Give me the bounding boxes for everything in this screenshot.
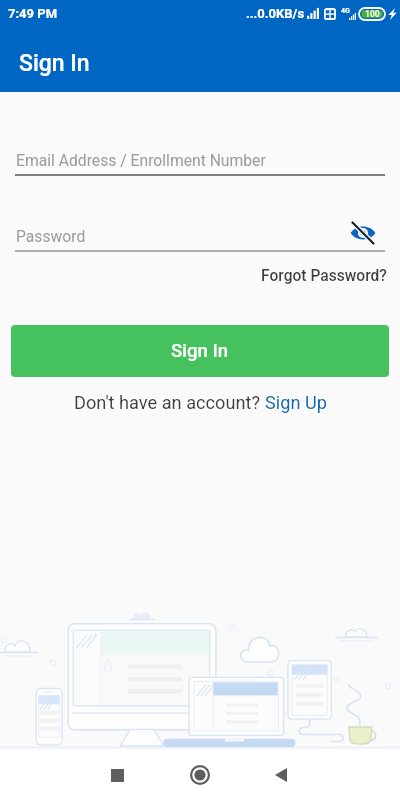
staticText: Sign In <box>171 340 229 362</box>
staticText: Password <box>16 227 86 245</box>
button[interactable]: Back <box>257 751 305 799</box>
button[interactable]: Forgot Password? <box>257 263 391 289</box>
staticText: 4G <box>341 7 350 15</box>
staticText: Sign Up <box>265 392 327 413</box>
staticText: Email Address / Enrollment Number <box>16 151 266 169</box>
button[interactable]: Recents <box>93 751 141 799</box>
staticText: Don't have an account? <box>74 392 265 413</box>
staticText: 7:49 PM <box>8 6 58 21</box>
staticText: Forgot Password? <box>261 267 387 285</box>
staticText: ...0.0KB/s <box>246 6 305 21</box>
button[interactable]: Sign Up <box>265 392 327 413</box>
button[interactable]: Home <box>176 751 224 799</box>
button[interactable]: Sign In <box>11 325 389 377</box>
button[interactable]: Show password <box>348 222 378 244</box>
staticText: 100 <box>365 9 380 19</box>
staticText: Sign In <box>19 50 90 77</box>
